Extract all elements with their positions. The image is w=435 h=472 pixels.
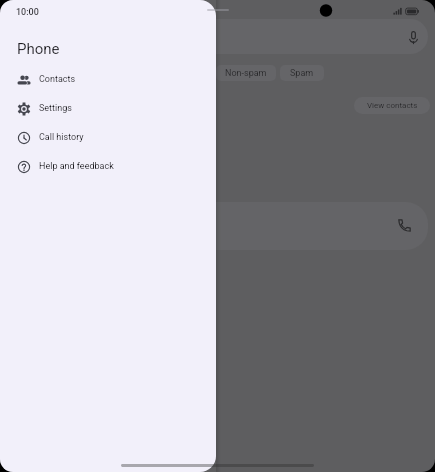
button[interactable]: View contacts [354,97,430,114]
button[interactable]: Call [396,217,413,234]
staticText: Call history [39,132,84,143]
button[interactable]: Call history [0,123,216,152]
staticText: Spam [290,68,314,79]
staticText: Non-spam [225,68,267,79]
staticText: Phone [17,40,60,58]
button[interactable]: Settings [0,94,216,123]
button[interactable]: Call [5,202,428,250]
button[interactable]: Voice search [405,29,422,46]
button[interactable]: Spam [280,65,324,81]
staticText: 10:00 [16,7,39,18]
button[interactable]: Voice search [14,19,428,54]
staticText: Settings [39,103,72,114]
button[interactable]: Non-spam [216,65,276,81]
button[interactable]: Contacts [0,65,216,94]
staticText: Help and feedback [39,161,114,172]
button[interactable]: Help and feedback [0,152,216,181]
staticText: Contacts [39,74,76,85]
staticText: View contacts [367,101,418,110]
